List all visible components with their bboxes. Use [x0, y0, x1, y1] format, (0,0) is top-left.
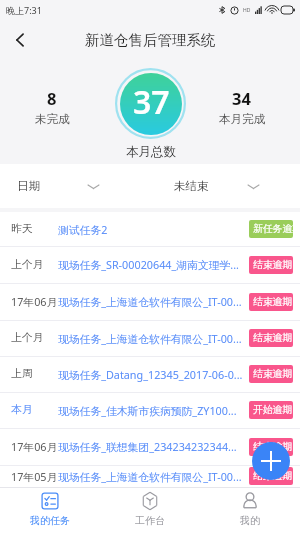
staticText: 上个月 [11, 258, 44, 272]
staticText: 上周 [11, 367, 33, 381]
staticText: 本月完成 [219, 112, 265, 126]
button[interactable]: 17年05月 [0, 465, 300, 487]
staticText: 昨天 [11, 222, 33, 236]
staticText: 结束逾期 [253, 441, 293, 453]
staticText: 我的任务 [30, 514, 70, 527]
button[interactable]: 本月 [0, 392, 300, 428]
staticText: 现场任务_联想集团_234234232344... [58, 439, 244, 454]
staticText: 现场任务_SR-00020644_湖南文理学... [58, 257, 244, 272]
staticText: 上个月 [11, 331, 44, 345]
staticText: 现场任务_佳木斯市疾病预防_ZY100... [58, 403, 244, 418]
staticText: 37 [133, 80, 170, 124]
staticText: 我的 [240, 514, 260, 527]
staticText: 结束逾期 [253, 296, 293, 308]
button[interactable]: 上周 [0, 356, 300, 392]
staticText: 日期 [17, 179, 40, 193]
button[interactable]: 17年06月 [0, 283, 300, 320]
button[interactable]: 昨天 [0, 212, 300, 246]
staticText: HD [243, 7, 251, 14]
staticText: 现场任务_上海道仓软件有限公_IT-00... [58, 469, 244, 484]
staticText: 17年05月 [11, 469, 58, 484]
staticText: 新任务逾期 [253, 223, 293, 235]
staticText: 未结束 [174, 179, 209, 193]
staticText: 开始逾期 [253, 404, 293, 416]
button[interactable]: 上个月 [0, 246, 300, 283]
staticText: 17年06月 [11, 294, 58, 309]
button[interactable]: 我的任务 [0, 488, 100, 533]
staticText: 工作台 [135, 514, 165, 527]
staticText: 新道仓售后管理系统 [85, 31, 216, 49]
staticText: 结束逾期 [253, 259, 293, 271]
button[interactable]: 17年06月 [0, 428, 300, 465]
staticText: 结束逾期 [253, 332, 293, 344]
staticText: 现场任务_Datang_12345_2017-06-0... [58, 367, 244, 382]
button[interactable]: 未结束 [150, 164, 300, 208]
staticText: 现场任务_上海道仓软件有限公_IT-00... [58, 331, 244, 346]
staticText: 8 [47, 87, 57, 109]
staticText: 34 [232, 87, 251, 109]
staticText: 结束逾期 [253, 470, 293, 482]
button[interactable]: 我的 [200, 488, 300, 533]
staticText: 本月总数 [126, 144, 176, 160]
staticText: 测试任务2 [58, 222, 244, 237]
button[interactable]: 工作台 [100, 488, 200, 533]
staticText: 现场任务_上海道仓软件有限公_IT-00... [58, 294, 244, 309]
staticText: 17年06月 [11, 439, 58, 454]
button[interactable]: 上个月 [0, 320, 300, 356]
staticText: 本月 [11, 403, 33, 417]
button[interactable]: 日期 [0, 164, 150, 208]
button[interactable]: Add task [252, 442, 290, 480]
staticText: 未完成 [35, 112, 70, 126]
staticText: 晚上7:31 [6, 4, 42, 16]
staticText: 结束逾期 [253, 368, 293, 380]
button[interactable]: Back [0, 20, 40, 60]
